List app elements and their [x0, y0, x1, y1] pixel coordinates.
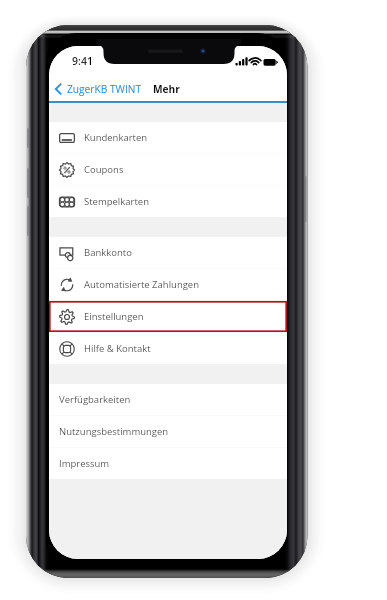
button[interactable]: Impressum — [49, 448, 287, 479]
button[interactable]: Nutzungsbestimmungen — [49, 416, 287, 447]
button[interactable]: Einstellungen — [49, 301, 287, 332]
staticText: Bankkonto — [84, 246, 132, 259]
staticText: Kundenkarten — [84, 131, 148, 144]
staticText: Automatisierte Zahlungen — [84, 278, 200, 291]
button[interactable]: Verfügbarkeiten — [49, 384, 287, 415]
staticText: Coupons — [84, 163, 124, 176]
other: Back — [54, 83, 62, 95]
staticText: Stempelkarten — [84, 195, 149, 208]
staticText: Nutzungsbestimmungen — [59, 425, 169, 438]
staticText: Impressum — [59, 457, 110, 470]
staticText: Hilfe & Kontakt — [84, 342, 151, 355]
staticText: ZugerKB TWINT — [67, 82, 142, 96]
button[interactable]: Hilfe & Kontakt — [49, 333, 287, 364]
button[interactable]: Back — [52, 78, 144, 100]
button[interactable]: Bankkonto — [49, 237, 287, 268]
button[interactable]: Automatisierte Zahlungen — [49, 269, 287, 300]
staticText: Mehr — [153, 82, 180, 96]
button[interactable]: Stempelkarten — [49, 186, 287, 217]
staticText: 9:41 — [72, 54, 93, 68]
button[interactable]: Kundenkarten — [49, 122, 287, 153]
staticText: Einstellungen — [84, 310, 144, 323]
button[interactable]: Coupons — [49, 154, 287, 185]
staticText: Verfügbarkeiten — [59, 393, 131, 406]
